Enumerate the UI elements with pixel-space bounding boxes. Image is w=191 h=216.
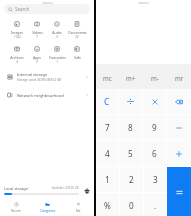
button[interactable]: Minus <box>167 115 190 140</box>
button[interactable]: 0 <box>120 193 143 216</box>
button[interactable]: . <box>144 193 167 216</box>
staticText: Search <box>15 6 30 12</box>
staticText: 1 <box>105 174 110 185</box>
staticText: 3 <box>56 35 58 39</box>
button[interactable]: 5 <box>119 141 142 166</box>
staticText: m+ <box>126 74 136 82</box>
staticText: 0 <box>129 200 134 211</box>
staticText: Audio <box>52 30 62 35</box>
staticText: 3 <box>153 174 158 185</box>
button[interactable]: Me <box>63 199 94 216</box>
button[interactable]: % <box>96 193 119 216</box>
staticText: 4 <box>16 60 18 64</box>
other: Minus <box>176 125 182 131</box>
button[interactable]: Internal storage <box>0 68 94 86</box>
staticText: 9 <box>36 60 38 64</box>
button[interactable]: Audio <box>47 21 67 39</box>
button[interactable]: 3 <box>144 167 167 192</box>
button[interactable]: Equals <box>167 167 191 216</box>
button[interactable]: Images <box>7 21 27 39</box>
button[interactable]: Apps <box>27 46 47 64</box>
button[interactable]: Plus <box>167 141 190 166</box>
staticText: 4 <box>105 148 110 159</box>
button[interactable]: mr <box>167 64 191 89</box>
staticText: Network neighbourhood <box>17 93 64 98</box>
button[interactable]: m- <box>143 64 167 89</box>
button[interactable]: Categories <box>32 199 63 216</box>
staticText: 5 <box>128 148 133 159</box>
staticText: C <box>104 96 110 107</box>
staticText: Recent <box>11 209 21 213</box>
button[interactable]: m+ <box>119 64 143 89</box>
staticText: % <box>104 200 111 211</box>
button[interactable]: 2 <box>120 167 143 192</box>
staticText: m- <box>151 74 159 82</box>
button[interactable]: 9 <box>143 115 166 140</box>
staticText: Favourites <box>49 55 66 60</box>
button[interactable]: Search <box>4 4 90 14</box>
button[interactable]: Recent <box>0 199 32 216</box>
staticText: Images <box>11 30 23 35</box>
button[interactable]: 4 <box>96 141 118 166</box>
button[interactable]: C <box>96 89 118 114</box>
staticText: . <box>154 200 157 211</box>
button[interactable]: 1 <box>96 167 119 192</box>
button[interactable]: Archives <box>7 46 27 64</box>
staticText: 9 <box>152 122 157 133</box>
button[interactable]: 7 <box>96 115 118 140</box>
staticText: Safe <box>74 55 81 60</box>
staticText: Documents <box>68 30 87 35</box>
staticText: mc <box>103 74 112 82</box>
staticText: mr <box>175 74 184 82</box>
button[interactable]: Backspace <box>167 89 190 114</box>
staticText: 2 <box>129 174 134 185</box>
staticText: Apps <box>33 55 41 60</box>
button[interactable]: Clean up storage <box>82 186 91 195</box>
staticText: Storage used: 33.98 GB/512 GB <box>17 78 61 82</box>
button[interactable]: 6 <box>143 141 166 166</box>
other: Backspace <box>175 98 183 106</box>
other: Plus <box>176 151 182 157</box>
button[interactable]: 8 <box>119 115 142 140</box>
button[interactable]: Videos <box>27 21 47 39</box>
staticText: 1242 <box>14 35 21 39</box>
button[interactable]: Documents <box>67 21 87 39</box>
button[interactable]: Network neighbourhood <box>0 86 94 104</box>
staticText: Archives <box>10 55 24 60</box>
other: Divide <box>127 98 134 105</box>
staticText: 7 <box>105 122 110 133</box>
staticText: 1 <box>56 60 58 64</box>
staticText: 22 <box>75 35 79 39</box>
staticText: 8 <box>128 122 133 133</box>
staticText: Videos <box>32 30 43 35</box>
button[interactable]: Favourites <box>47 46 67 64</box>
staticText: 7 <box>36 35 38 39</box>
staticText: 6 <box>152 148 157 159</box>
staticText: Internal storage <box>17 72 48 77</box>
staticText: Me <box>76 209 81 213</box>
other: Multiply <box>152 99 158 105</box>
button[interactable]: Multiply <box>143 89 166 114</box>
button[interactable]: mc <box>96 64 119 89</box>
staticText: Available: 478.05 GB <box>52 186 79 190</box>
button[interactable]: Divide <box>119 89 142 114</box>
staticText: Local storage <box>4 186 28 191</box>
staticText: Categories <box>40 209 56 213</box>
button[interactable]: Safe <box>67 46 87 64</box>
